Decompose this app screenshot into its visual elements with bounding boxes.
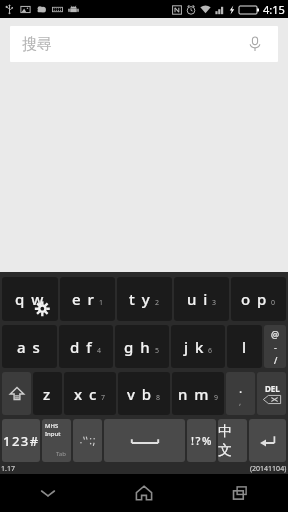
staticText: 3	[212, 298, 217, 308]
button[interactable]: dot	[226, 372, 255, 415]
button[interactable]: Recents	[192, 474, 288, 512]
button[interactable]: Hide keyboard	[0, 474, 96, 512]
staticText: t y	[129, 289, 152, 309]
button[interactable]: a s	[2, 325, 57, 368]
staticText: z	[43, 384, 52, 404]
button[interactable]: g h	[115, 325, 169, 368]
button[interactable]: x c	[64, 372, 116, 415]
staticText: 4	[97, 346, 102, 356]
staticText: x c	[74, 384, 98, 404]
staticText: -	[274, 341, 277, 353]
staticText: @	[271, 328, 280, 340]
staticText: 4:15	[263, 2, 285, 17]
button[interactable]: mhs	[42, 419, 71, 462]
button[interactable]: space	[104, 419, 185, 462]
staticText: DEL	[265, 383, 280, 394]
button[interactable]: v b	[118, 372, 170, 415]
button[interactable]: n m	[172, 372, 224, 415]
button[interactable]: j k	[171, 325, 225, 368]
staticText: e r	[72, 289, 96, 309]
staticText: q w	[15, 289, 45, 309]
staticText: 8	[156, 393, 161, 403]
button[interactable]: @	[264, 325, 286, 368]
button[interactable]: enter	[249, 419, 286, 462]
button[interactable]: z	[33, 372, 62, 415]
staticText: ,	[239, 396, 242, 407]
button[interactable]: q w	[2, 277, 58, 321]
button[interactable]: e r	[60, 277, 115, 321]
staticText: l	[242, 337, 248, 357]
staticText: Tab	[56, 450, 66, 458]
staticText: n m	[178, 384, 211, 404]
button[interactable]: t y	[117, 277, 172, 321]
staticText: 5	[155, 346, 160, 356]
button[interactable]: u i	[174, 277, 229, 321]
staticText: /	[274, 354, 278, 366]
button[interactable]: shift	[2, 372, 31, 415]
staticText: 7	[101, 393, 106, 403]
staticText: 2	[155, 298, 160, 308]
staticText: 1	[99, 298, 104, 308]
staticText: 搜尋	[22, 35, 52, 54]
staticText: (20141104)	[250, 464, 287, 474]
button[interactable]: 搜尋	[10, 26, 278, 62]
staticText: 1.17	[1, 464, 15, 474]
staticText: !?%	[191, 433, 213, 448]
button[interactable]: 123#	[2, 419, 40, 462]
staticText: 9	[214, 393, 219, 403]
staticText: 6	[208, 346, 213, 356]
button[interactable]: o p	[231, 277, 286, 321]
staticText: MHS	[45, 422, 59, 430]
staticText: Input	[45, 430, 61, 438]
button[interactable]: Voice search	[244, 33, 266, 55]
staticText: 中文	[218, 423, 247, 459]
button[interactable]: punc	[73, 419, 102, 462]
button[interactable]: 中文	[218, 419, 247, 462]
button[interactable]: l	[227, 325, 262, 368]
staticText: u i	[187, 289, 209, 309]
staticText: a s	[17, 337, 42, 357]
staticText: j k	[184, 337, 205, 357]
staticText: 0	[271, 298, 276, 308]
staticText: .	[239, 380, 243, 396]
staticText: d f	[70, 337, 94, 357]
staticText: g h	[124, 337, 152, 357]
staticText: 123#	[3, 432, 40, 450]
staticText: o p	[241, 289, 268, 309]
button[interactable]: Home	[96, 474, 192, 512]
button[interactable]: !?%	[187, 419, 216, 462]
staticText: v b	[127, 384, 153, 404]
button[interactable]: del	[257, 372, 286, 415]
button[interactable]: d f	[59, 325, 113, 368]
